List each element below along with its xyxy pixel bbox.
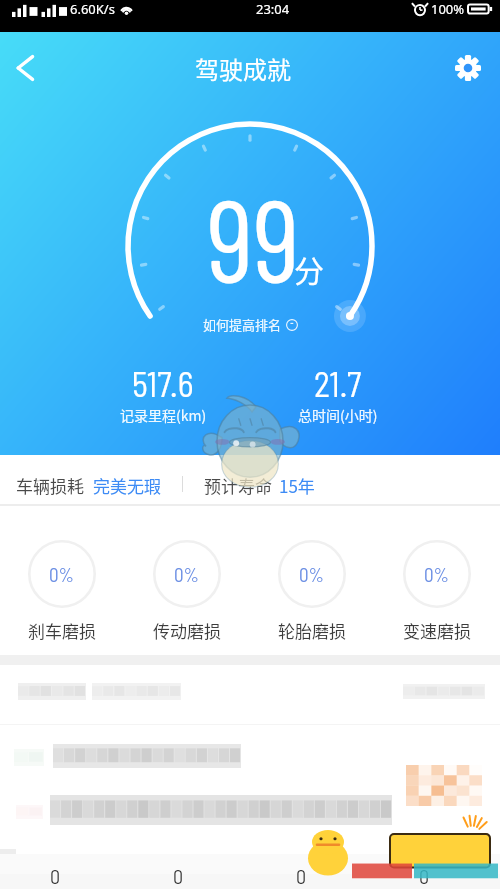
button[interactable]: 0% <box>135 536 239 643</box>
staticText: 6.60K/s <box>70 0 115 18</box>
staticText: 轮胎磨损 <box>278 618 346 643</box>
staticText: 15年 <box>279 473 315 498</box>
staticText: 总时间(小时) <box>298 405 378 425</box>
staticText: 预计寿命 <box>204 473 272 498</box>
staticText: 23:04 <box>256 0 290 18</box>
staticText: 完美无瑕 <box>93 473 161 498</box>
button[interactable]: 0% <box>385 536 489 643</box>
staticText: 0 <box>404 864 444 888</box>
staticText: 0% <box>299 563 325 586</box>
staticText: 分 <box>294 247 324 290</box>
button[interactable]: Settings <box>436 32 500 104</box>
staticText: 99 <box>207 168 300 306</box>
staticText: 0 <box>158 864 198 888</box>
staticText: 0% <box>174 563 200 586</box>
staticText: 517.6 <box>132 363 194 404</box>
staticText: 传动磨损 <box>153 618 221 643</box>
staticText: 如何提高排名 <box>203 315 282 334</box>
staticText: 0 <box>281 864 321 888</box>
button[interactable]: 0% <box>260 536 364 643</box>
button[interactable]: Back <box>0 32 50 104</box>
staticText: 0 <box>35 864 75 888</box>
staticText: 变速磨损 <box>403 618 471 643</box>
button[interactable]: 如何提高排名 <box>203 315 298 334</box>
staticText: 驾驶成就 <box>195 51 291 86</box>
staticText: 记录里程(km) <box>120 405 207 425</box>
staticText: 0% <box>49 563 75 586</box>
button[interactable]: 0% <box>10 536 114 643</box>
staticText: 0% <box>424 563 450 586</box>
staticText: 刹车磨损 <box>28 618 96 643</box>
staticText: 100% <box>431 0 465 18</box>
staticText: 21.7 <box>314 363 362 404</box>
staticText: 车辆损耗 <box>16 473 84 498</box>
